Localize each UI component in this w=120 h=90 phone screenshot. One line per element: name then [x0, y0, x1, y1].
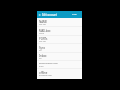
- staticText: on: [39, 57, 42, 60]
- staticText: NAME: [39, 20, 48, 24]
- staticText: auto: [39, 65, 44, 68]
- button[interactable]: Back: [38, 13, 42, 17]
- staticText: offline: [39, 71, 48, 75]
- button[interactable]: Inbox: [37, 54, 82, 62]
- staticText: enabled now: [39, 74, 52, 77]
- staticText: MAILbox: [39, 29, 51, 33]
- button[interactable]: authentication Type: [37, 62, 82, 70]
- staticText: Sync: [39, 46, 46, 50]
- staticText: Edit account: [42, 13, 57, 17]
- staticText: not set: [39, 40, 46, 43]
- staticText: not set: [39, 23, 46, 26]
- button[interactable]: SAVE: [71, 13, 78, 16]
- staticText: on: [39, 49, 42, 52]
- button[interactable]: MAILbox: [37, 29, 82, 37]
- staticText: authentication Type: [39, 62, 58, 65]
- staticText: PORTs: [39, 37, 48, 41]
- staticText: SAVE: [72, 13, 77, 16]
- button[interactable]: PORTs: [37, 37, 82, 45]
- staticText: Inbox: [39, 54, 47, 58]
- button[interactable]: offline: [37, 71, 82, 79]
- staticText: none: [39, 32, 45, 35]
- button[interactable]: NAME: [37, 20, 82, 28]
- button[interactable]: Sync: [37, 46, 82, 54]
